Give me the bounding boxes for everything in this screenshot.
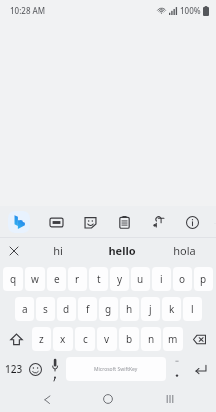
staticText: b [126,332,133,346]
staticText: hi [53,243,63,258]
button[interactable]: Voice input [45,354,65,384]
button[interactable]: y [110,267,129,291]
button[interactable]: hola [153,238,216,262]
button[interactable]: b [119,327,139,351]
button[interactable]: Shift [2,324,31,354]
staticText: f [86,302,90,316]
button[interactable]: w [25,267,45,291]
staticText: i [160,272,163,286]
button[interactable]: 123 [2,354,25,384]
staticText: m [168,332,178,346]
button[interactable]: h [120,297,139,321]
staticText: p [200,272,207,286]
button[interactable]: Back [32,386,62,412]
button[interactable]: m [163,327,183,351]
button[interactable]: d [57,297,76,321]
staticText: r [75,272,80,286]
button[interactable]: x [53,327,73,351]
staticText: j [149,302,152,316]
button[interactable]: z [32,327,51,351]
button[interactable]: n [141,327,161,351]
button[interactable]: Bing [8,211,30,233]
button[interactable]: Stickers [80,212,100,232]
button[interactable]: r [68,267,87,291]
button[interactable]: l [183,297,202,321]
button[interactable]: Home [93,386,123,412]
staticText: v [104,332,110,346]
staticText: w [31,272,39,286]
staticText: l [191,302,194,316]
button[interactable]: hello [90,238,153,262]
staticText: 100% [180,5,201,16]
staticText: h [126,302,133,316]
staticText: s [43,302,48,316]
staticText: a [22,302,28,316]
staticText: z [39,332,44,346]
button[interactable]: Backspace [184,324,214,354]
staticText: y [117,272,123,286]
button[interactable]: Emoji [25,354,45,384]
staticText: c [83,332,88,346]
button[interactable]: Enter [187,354,214,384]
staticText: k [169,302,175,316]
staticText: 10:28 AM [10,5,46,16]
staticText: g [105,302,112,316]
button[interactable]: g [99,297,118,321]
staticText: t [97,272,101,286]
button[interactable]: q [3,267,23,291]
staticText: n [148,332,155,346]
button[interactable]: i [152,267,171,291]
button[interactable]: u [131,267,150,291]
staticText: hola [173,243,196,258]
staticText: 123 [5,362,23,376]
button[interactable]: e [47,267,66,291]
button[interactable]: Info [182,212,202,232]
button[interactable]: GIF [46,212,66,232]
staticText: x [60,332,66,346]
button[interactable]: t [89,267,108,291]
staticText: hello [108,243,136,258]
staticText: Microsoft SwiftKey [94,366,138,373]
button[interactable]: Recent apps [155,386,185,412]
button[interactable]: c [75,327,95,351]
button[interactable]: hi [26,238,90,262]
button[interactable]: a [15,297,34,321]
button[interactable]: o [173,267,192,291]
button[interactable]: Clipboard [114,212,134,232]
button[interactable]: j [141,297,160,321]
button[interactable]: s [36,297,55,321]
staticText: o [179,272,186,286]
button[interactable]: f [78,297,97,321]
staticText: d [63,302,70,316]
button[interactable]: k [162,297,181,321]
staticText: e [54,272,60,286]
button[interactable]: Period [167,354,187,384]
button[interactable]: p [194,267,213,291]
staticText: u [137,272,144,286]
button[interactable]: Close suggestions [5,242,22,259]
button[interactable]: Translate [148,212,168,232]
button[interactable]: Microsoft SwiftKey [66,357,166,381]
button[interactable]: v [97,327,117,351]
staticText: q [10,272,17,286]
